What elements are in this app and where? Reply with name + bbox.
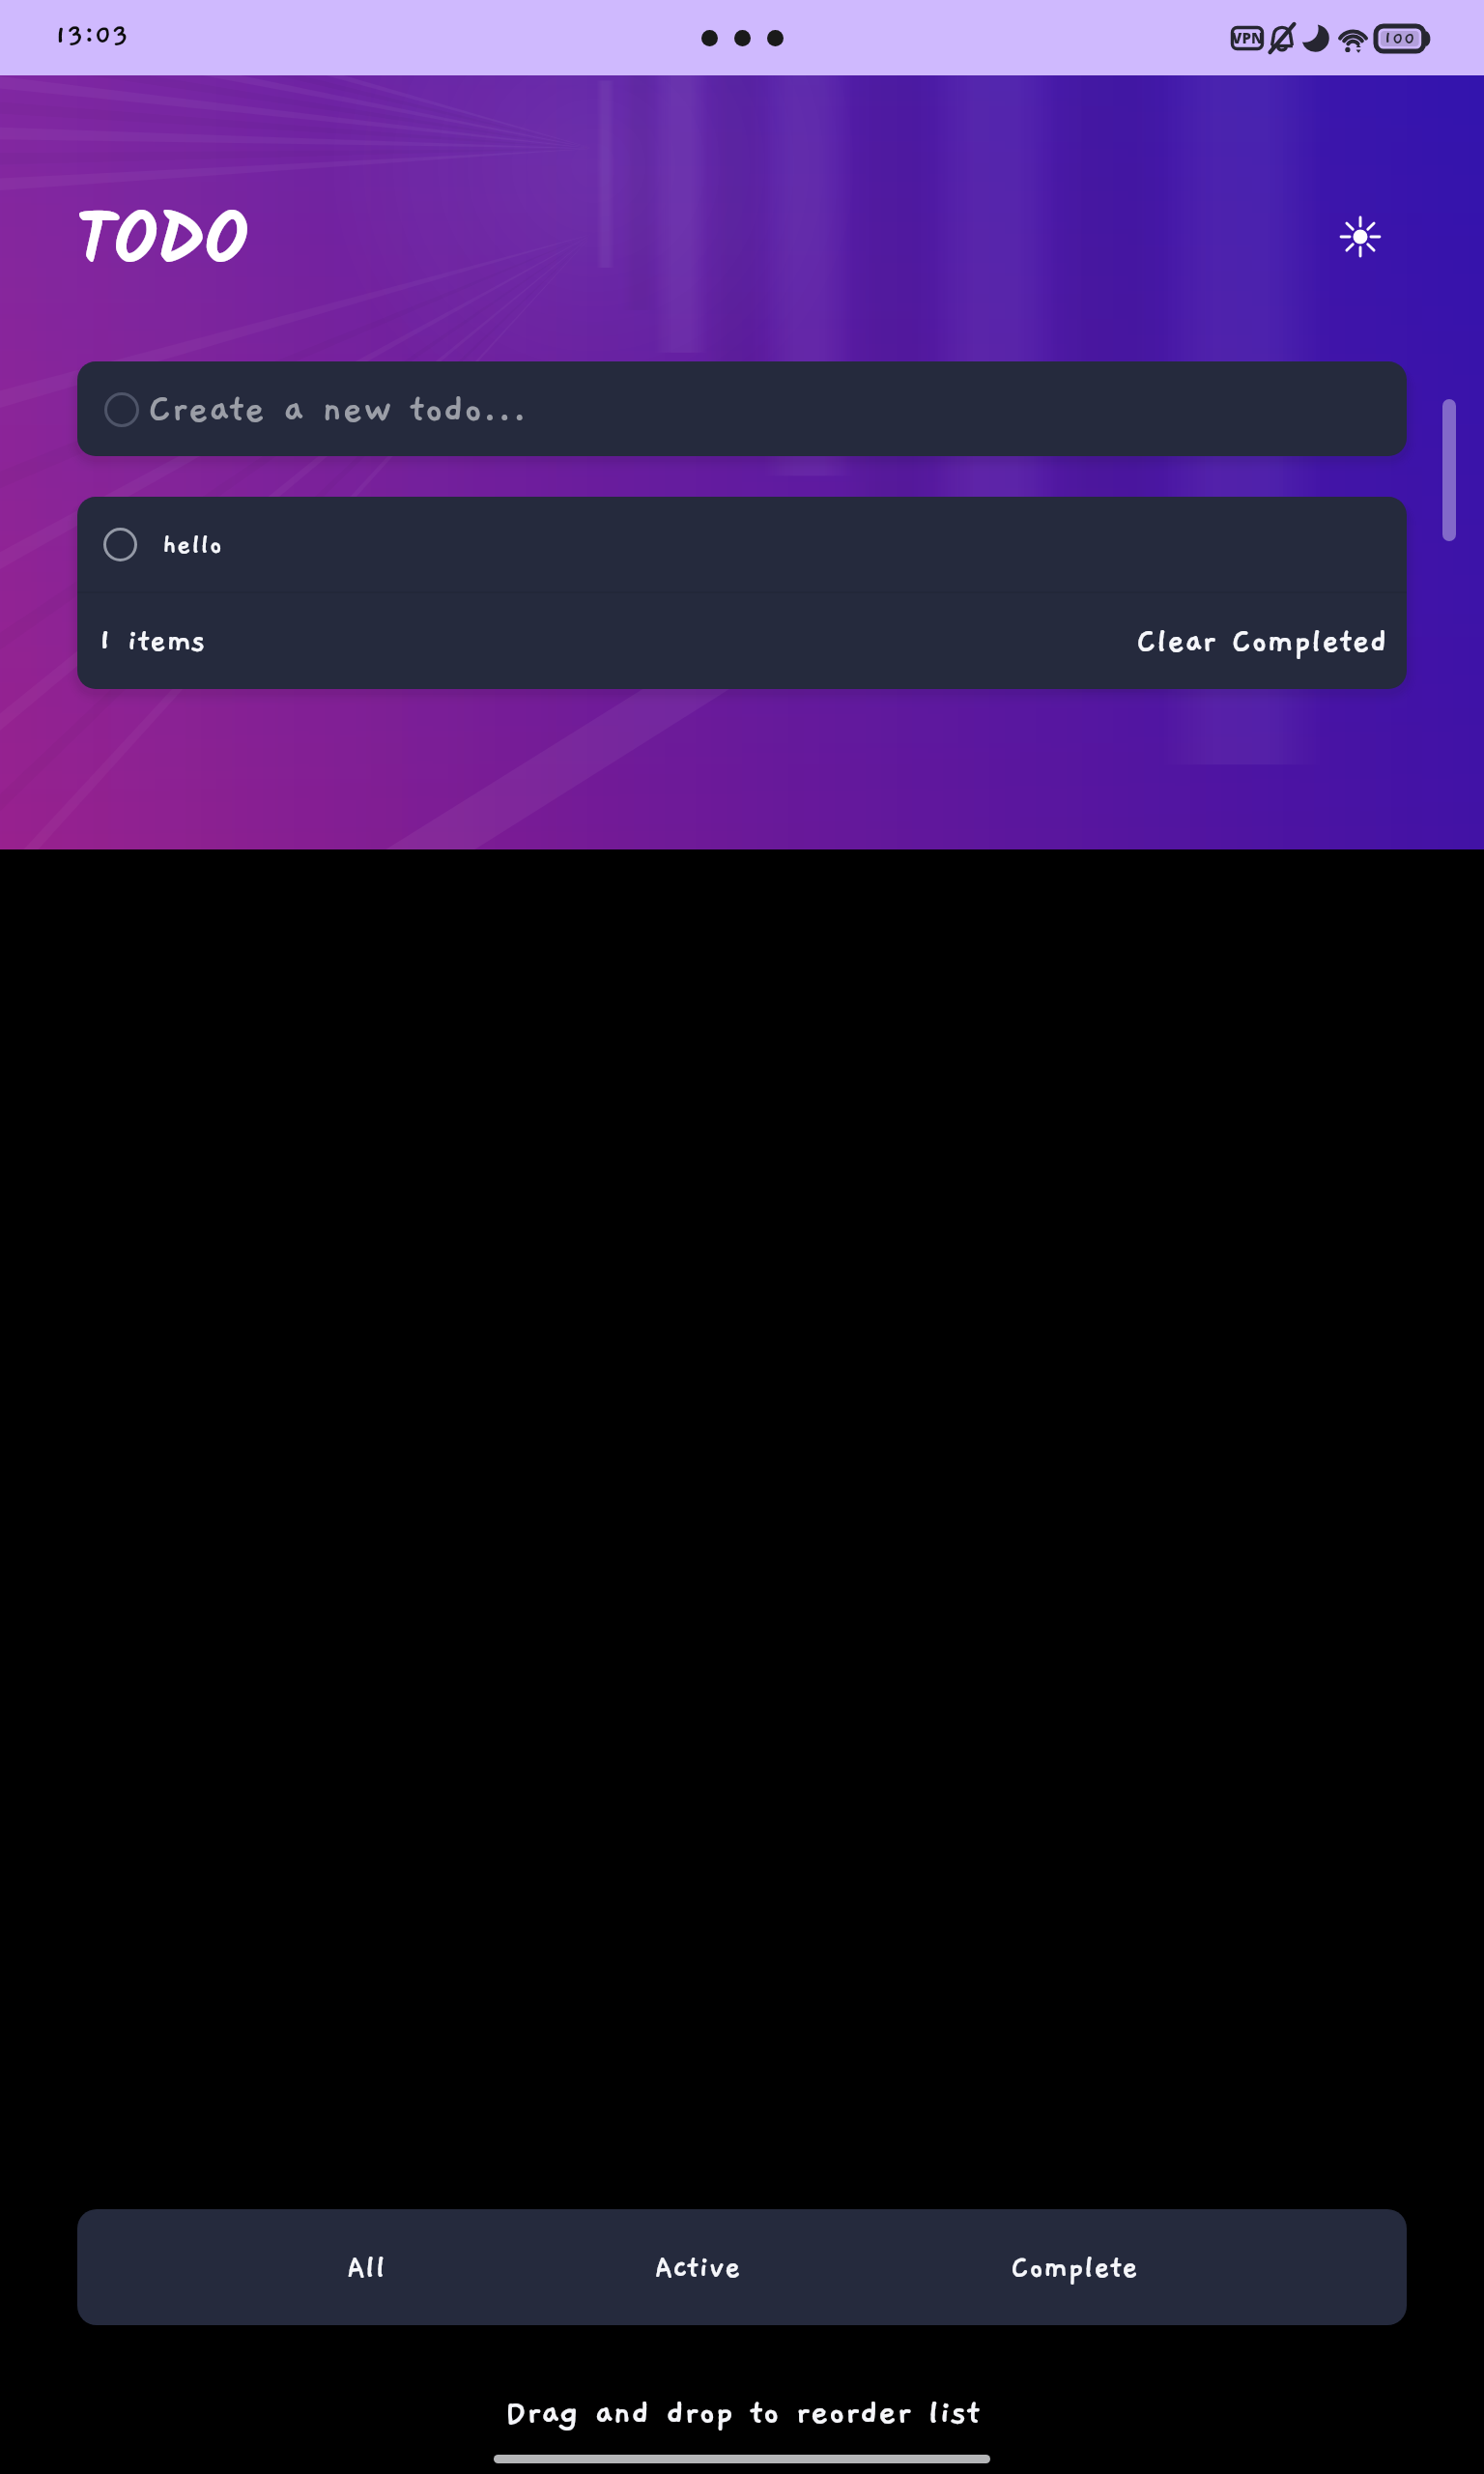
staticText: TODO [75, 187, 248, 300]
staticText: Drag and drop to reorder list [504, 2394, 981, 2432]
staticText: Create a new todo... [148, 388, 528, 431]
staticText: 100 [1384, 28, 1416, 48]
button[interactable]: Clear Completed [1136, 623, 1387, 660]
button[interactable]: Complete [1011, 2209, 1138, 2325]
button[interactable]: Create a new todo... [77, 361, 1407, 456]
staticText: All [347, 2251, 385, 2285]
staticText: Clear Completed [1136, 623, 1387, 660]
button[interactable]: hello [77, 497, 1407, 591]
staticText: 1 items [98, 624, 206, 659]
button[interactable]: Active [654, 2209, 741, 2325]
staticText: Active [654, 2251, 741, 2285]
staticText: VPN [1232, 28, 1264, 47]
staticText: hello [162, 530, 222, 560]
button[interactable]: All [347, 2209, 385, 2325]
staticText: 13:03 [54, 20, 129, 51]
staticText: Complete [1011, 2251, 1138, 2285]
button[interactable]: Toggle light theme [1312, 188, 1409, 285]
